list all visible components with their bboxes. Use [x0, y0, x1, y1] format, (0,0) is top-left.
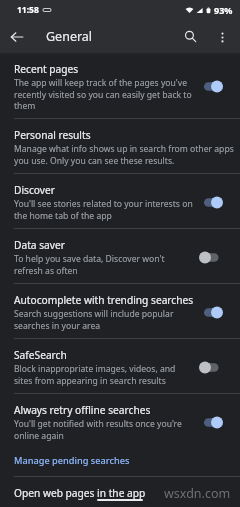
- staticText: 11:58: [17, 4, 39, 16]
- staticText: You'll get notified with results once yo…: [14, 418, 195, 441]
- staticText: Recent pages: [14, 62, 79, 76]
- staticText: Block inappropriate images, videos, and …: [14, 363, 195, 386]
- staticText: You'll see stories related to your inter…: [14, 198, 195, 221]
- button[interactable]: Search: [174, 20, 207, 53]
- button[interactable]: Personal results: [0, 119, 240, 173]
- staticText: Personal results: [14, 128, 91, 142]
- button[interactable]: More options: [207, 22, 237, 52]
- button[interactable]: Recent pages: [0, 53, 240, 118]
- staticText: wsxdn.com: [164, 485, 231, 502]
- staticText: The app will keep track of the pages you…: [14, 77, 195, 111]
- button[interactable]: Back: [0, 20, 33, 53]
- staticText: SafeSearch: [14, 348, 67, 362]
- staticText: Open web pages in the app: [14, 486, 146, 500]
- staticText: 93%: [214, 4, 233, 16]
- staticText: Data saver: [14, 238, 65, 252]
- button[interactable]: SafeSearch: [0, 339, 240, 393]
- button[interactable]: Discover: [0, 174, 240, 228]
- staticText: Manage what info shows up in search from…: [14, 143, 234, 166]
- button[interactable]: Always retry offline searches: [0, 394, 240, 448]
- staticText: Autocomplete with trending searches: [14, 293, 194, 307]
- button[interactable]: Manage pending searches: [0, 448, 240, 476]
- staticText: General: [46, 28, 93, 45]
- staticText: Search suggestions will include popular …: [14, 308, 195, 331]
- staticText: Discover: [14, 183, 55, 197]
- button[interactable]: Autocomplete with trending searches: [0, 284, 240, 338]
- button[interactable]: Data saver: [0, 229, 240, 283]
- staticText: To help you save data, Discover won't re…: [14, 253, 195, 276]
- staticText: Manage pending searches: [14, 454, 130, 467]
- staticText: Always retry offline searches: [14, 403, 151, 417]
- button[interactable]: Open web pages in the app: [0, 477, 240, 507]
